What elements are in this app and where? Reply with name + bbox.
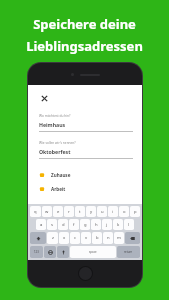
staticText: m bbox=[117, 235, 121, 241]
button[interactable]: z bbox=[47, 232, 58, 244]
button[interactable]: 123 bbox=[30, 246, 43, 258]
button[interactable]: s bbox=[47, 219, 57, 230]
button[interactable]: p bbox=[130, 206, 140, 217]
staticText: n bbox=[107, 235, 110, 241]
button[interactable]: d bbox=[58, 219, 68, 230]
staticText: q bbox=[34, 209, 37, 215]
staticText: Wo möchtest du hin? bbox=[39, 114, 71, 118]
button[interactable]: b bbox=[92, 232, 102, 244]
staticText: s bbox=[51, 222, 54, 228]
staticText: c bbox=[74, 235, 77, 241]
staticText: j bbox=[106, 222, 108, 228]
button[interactable]: SHIFT bbox=[30, 232, 46, 244]
staticText: return bbox=[124, 250, 133, 254]
staticText: h bbox=[95, 222, 98, 228]
staticText: Zuhause bbox=[51, 172, 71, 178]
staticText: z bbox=[52, 235, 54, 241]
staticText: v bbox=[85, 235, 88, 241]
staticText: d bbox=[62, 222, 65, 228]
button[interactable]: o bbox=[119, 206, 129, 217]
staticText: i bbox=[112, 209, 114, 215]
button[interactable]: x bbox=[59, 232, 69, 244]
button[interactable]: f bbox=[69, 219, 79, 230]
button[interactable]: Wo möchtest du hin? bbox=[39, 114, 133, 132]
button[interactable]: MIC bbox=[57, 246, 69, 258]
staticText: p bbox=[134, 209, 137, 215]
staticText: l bbox=[128, 222, 130, 228]
staticText: a bbox=[40, 222, 43, 228]
staticText: e bbox=[57, 209, 60, 215]
button[interactable]: k bbox=[113, 219, 123, 230]
staticText: b bbox=[96, 235, 99, 241]
staticText: space bbox=[89, 250, 97, 254]
staticText: f bbox=[73, 222, 75, 228]
button[interactable]: u bbox=[97, 206, 107, 217]
button[interactable]: return bbox=[117, 246, 140, 258]
staticText: Heimhaus bbox=[39, 121, 66, 128]
button[interactable]: c bbox=[70, 232, 80, 244]
button[interactable]: r bbox=[64, 206, 74, 217]
staticText: k bbox=[117, 222, 120, 228]
button[interactable]: h bbox=[91, 219, 101, 230]
button[interactable]: v bbox=[81, 232, 91, 244]
staticText: t bbox=[79, 209, 81, 215]
button[interactable]: Wie sollen wir's nennen? bbox=[39, 141, 133, 159]
button[interactable]: space bbox=[70, 246, 116, 258]
staticText: Oktoberfest bbox=[39, 148, 71, 155]
button[interactable]: g bbox=[80, 219, 90, 230]
button[interactable]: l bbox=[124, 219, 134, 230]
button[interactable]: GLOBE bbox=[44, 246, 56, 258]
button[interactable]: n bbox=[103, 232, 113, 244]
staticText: 123 bbox=[34, 250, 39, 254]
staticText: Lieblingsadressen bbox=[26, 37, 143, 55]
staticText: x bbox=[63, 235, 66, 241]
staticText: Wie sollen wir's nennen? bbox=[39, 141, 76, 145]
button[interactable]: y bbox=[86, 206, 96, 217]
staticText: Arbeit bbox=[51, 186, 66, 192]
staticText: u bbox=[101, 209, 104, 215]
button[interactable]: e bbox=[53, 206, 63, 217]
button[interactable]: DELETE bbox=[125, 232, 140, 244]
staticText: o bbox=[123, 209, 126, 215]
staticText: Speichere deine bbox=[33, 15, 136, 33]
button[interactable]: Schließen bbox=[39, 93, 50, 104]
button[interactable]: t bbox=[75, 206, 85, 217]
button[interactable]: Arbeit bbox=[39, 182, 133, 196]
button[interactable]: w bbox=[42, 206, 52, 217]
staticText: r bbox=[68, 209, 70, 215]
staticText: g bbox=[84, 222, 87, 228]
button[interactable]: j bbox=[102, 219, 112, 230]
staticText: y bbox=[90, 209, 93, 215]
button[interactable]: Zuhause bbox=[39, 168, 133, 182]
button[interactable]: i bbox=[108, 206, 118, 217]
staticText: w bbox=[45, 209, 49, 215]
button[interactable]: m bbox=[114, 232, 124, 244]
button[interactable]: q bbox=[30, 206, 41, 217]
button[interactable]: a bbox=[36, 219, 46, 230]
